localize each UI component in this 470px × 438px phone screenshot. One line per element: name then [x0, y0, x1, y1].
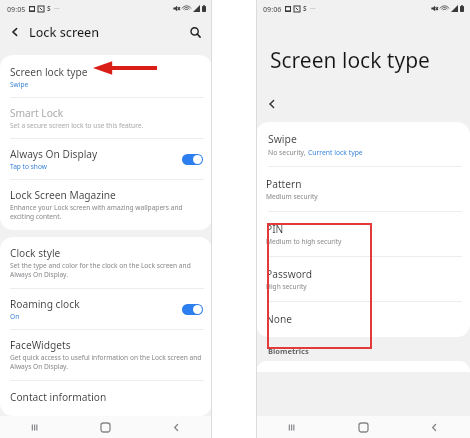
button[interactable]: Back: [399, 416, 470, 438]
staticText: Enhance your Lock screen with amazing wa…: [10, 203, 203, 221]
button[interactable]: Password: [256, 257, 470, 301]
button[interactable]: PIN: [256, 212, 470, 256]
button[interactable]: Roaming clock: [0, 289, 212, 329]
staticText: Swipe: [268, 132, 297, 146]
button[interactable]: Recents: [0, 416, 70, 438]
button[interactable]: Always On Display toggle: [182, 154, 203, 165]
staticText: 09:05: [7, 4, 26, 14]
staticText: S: [303, 4, 307, 13]
staticText: FaceWidgets: [10, 338, 71, 352]
button[interactable]: Back: [141, 416, 212, 438]
staticText: Smart Lock: [10, 106, 64, 120]
staticText: Medium to high security: [266, 237, 342, 246]
button[interactable]: None: [256, 302, 470, 337]
staticText: Screen lock type: [270, 46, 430, 75]
button[interactable]: Smart Lock: [0, 98, 212, 138]
button[interactable]: Always On Display: [0, 139, 212, 179]
button[interactable]: Recents: [256, 416, 328, 438]
button[interactable]: Screen lock type: [0, 58, 212, 97]
button[interactable]: Navigate up: [265, 97, 279, 111]
staticText: Lock Screen Magazine: [10, 188, 116, 202]
button[interactable]: Search: [187, 24, 203, 40]
staticText: On: [10, 312, 20, 321]
staticText: Current lock type: [308, 148, 363, 157]
button[interactable]: Clock style: [0, 237, 212, 288]
staticText: Always On Display: [10, 147, 98, 161]
staticText: Pattern: [266, 177, 302, 191]
staticText: None: [266, 312, 292, 326]
staticText: Password: [266, 267, 313, 281]
staticText: Biometrics: [268, 346, 309, 356]
staticText: High security: [266, 282, 307, 291]
staticText: Contact information: [10, 390, 107, 404]
staticText: PIN: [266, 222, 284, 236]
staticText: Roaming clock: [10, 297, 80, 311]
button[interactable]: Home: [70, 416, 141, 438]
staticText: Get quick access to useful information o…: [10, 353, 203, 371]
button[interactable]: Home: [328, 416, 399, 438]
button[interactable]: FaceWidgets: [0, 330, 212, 380]
button[interactable]: Contact information: [0, 381, 212, 416]
staticText: Screen lock type: [10, 65, 88, 79]
button[interactable]: Pattern: [256, 167, 470, 211]
button[interactable]: Swipe: [256, 125, 470, 166]
staticText: Lock screen: [29, 24, 100, 41]
staticText: Set a secure screen lock to use this fea…: [10, 121, 144, 130]
staticText: ···: [54, 4, 60, 14]
button[interactable]: Lock Screen Magazine: [0, 180, 212, 230]
staticText: Tap to show: [10, 162, 47, 171]
button[interactable]: Navigate up: [8, 25, 22, 39]
staticText: No security,: [268, 148, 308, 157]
staticText: S: [47, 4, 51, 13]
staticText: Set the type and color for the clock on …: [10, 261, 203, 279]
staticText: Clock style: [10, 246, 61, 260]
staticText: ···: [310, 4, 316, 14]
staticText: 09:06: [263, 4, 282, 14]
button[interactable]: Roaming clock toggle: [182, 304, 203, 315]
staticText: Swipe: [10, 80, 29, 89]
staticText: Medium security: [266, 192, 318, 201]
